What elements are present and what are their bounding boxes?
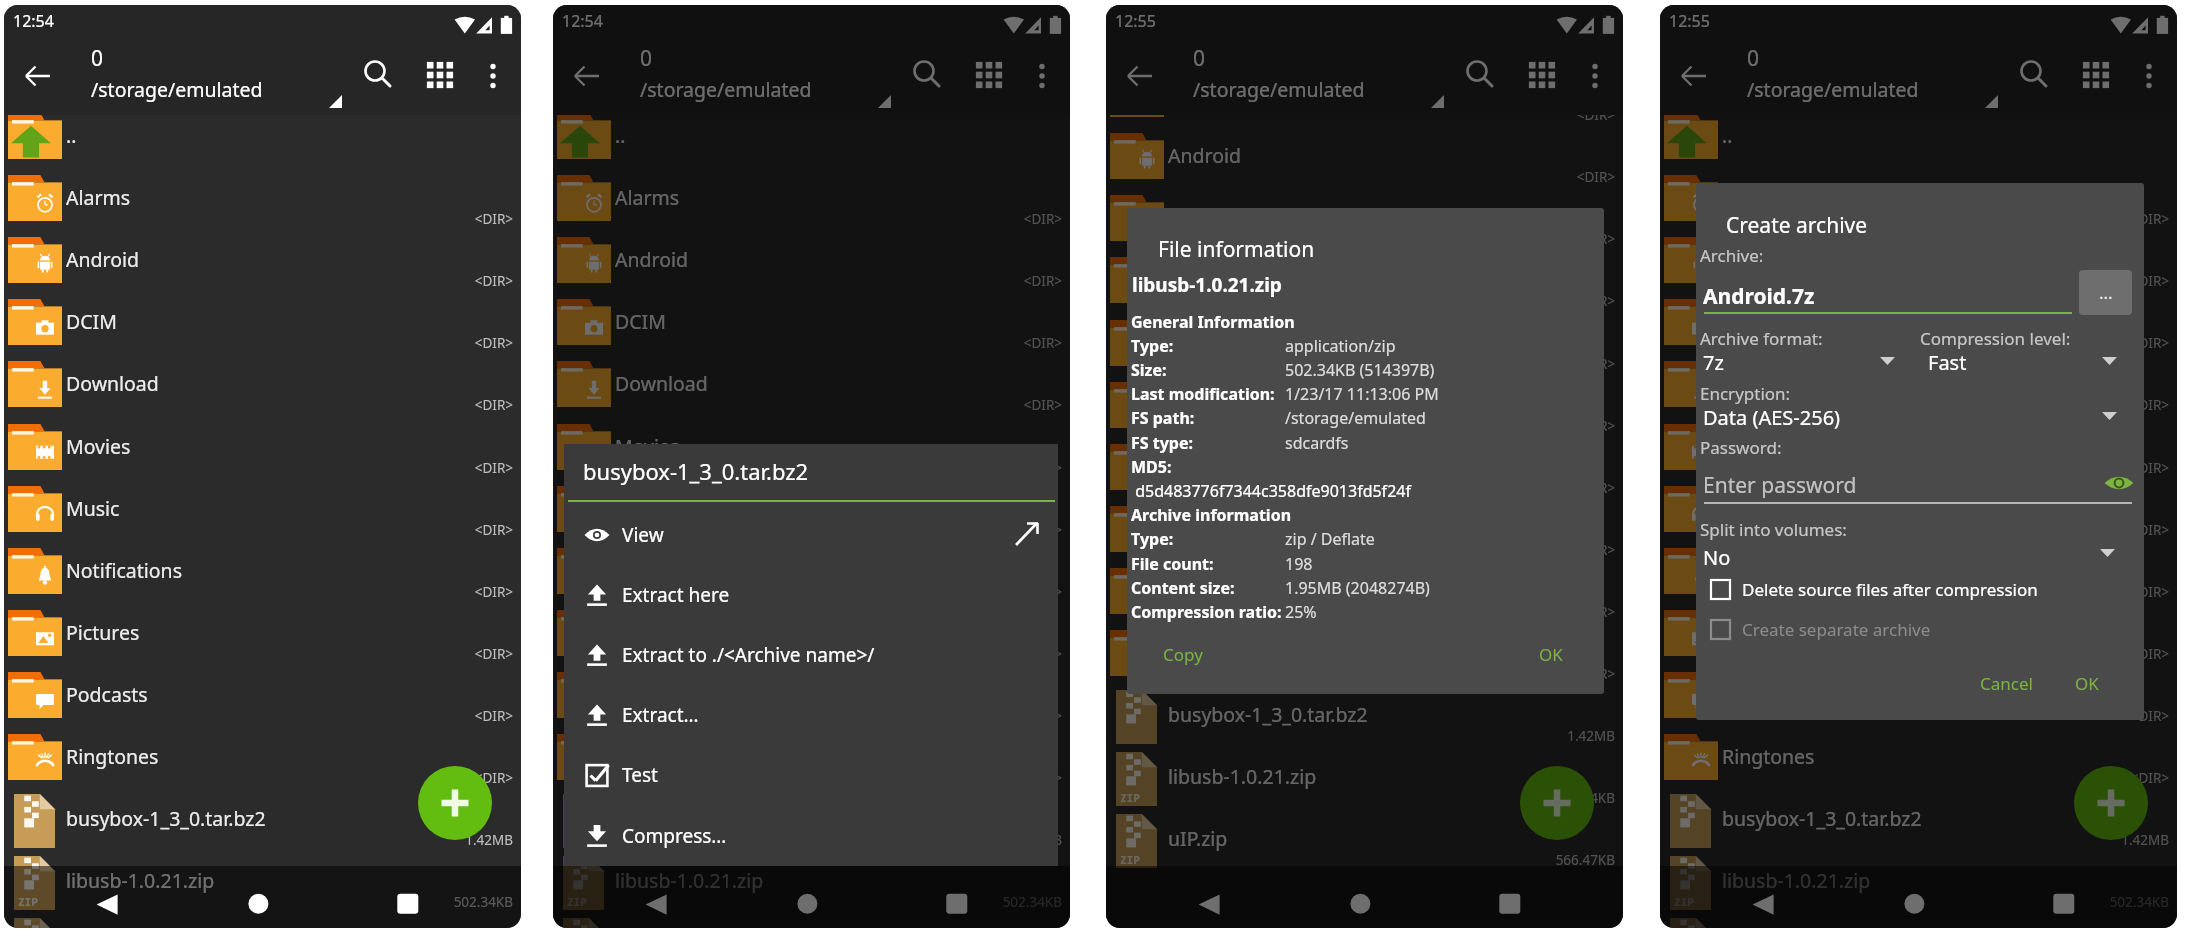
button[interactable]: ZIP	[4, 856, 521, 918]
button[interactable]: ZIP	[553, 856, 1070, 918]
button[interactable]: Android	[1660, 235, 2177, 297]
button[interactable]: Recent apps	[2040, 880, 2088, 928]
button[interactable]: ZIP	[1660, 856, 2177, 918]
button[interactable]: Search	[2009, 49, 2057, 97]
button[interactable]: Music	[1106, 380, 1623, 442]
button[interactable]: Download	[1660, 359, 2177, 421]
button[interactable]: Extract here	[564, 565, 1058, 625]
button[interactable]: More options	[1018, 52, 1066, 100]
button[interactable]: Pictures	[1106, 504, 1623, 566]
button[interactable]: ..	[1660, 111, 2177, 173]
button[interactable]: ZIP	[1660, 918, 2177, 928]
button[interactable]: Music	[1660, 484, 2177, 546]
button[interactable]: Home	[1336, 880, 1384, 928]
button[interactable]: Copy	[1163, 643, 1203, 666]
button[interactable]: Back	[563, 52, 611, 100]
button[interactable]: Recent apps	[384, 880, 432, 928]
button[interactable]: Alarms	[1660, 173, 2177, 235]
button[interactable]: Download	[4, 359, 521, 421]
button[interactable]: Delete source files after compression	[1710, 575, 2027, 603]
button[interactable]: Music	[4, 484, 521, 546]
button[interactable]: Search	[1455, 49, 1503, 97]
button[interactable]: Ringtones	[1106, 628, 1623, 690]
button[interactable]: Ringtones	[1660, 732, 2177, 794]
button[interactable]: Extract…	[564, 685, 1058, 745]
button[interactable]: Search	[902, 49, 950, 97]
button[interactable]: View	[564, 505, 1058, 565]
button[interactable]: Podcasts	[553, 670, 1070, 732]
button[interactable]: Extract to ./<Archive name>/	[564, 625, 1058, 685]
button[interactable]: Back	[634, 880, 682, 928]
button[interactable]: Back	[1116, 52, 1164, 100]
button[interactable]: Test	[564, 745, 1058, 805]
button[interactable]: ZIP	[4, 918, 521, 928]
button[interactable]: Notifications	[4, 546, 521, 608]
button[interactable]: Podcasts	[4, 670, 521, 732]
button[interactable]: Notifications	[1660, 546, 2177, 608]
button[interactable]: Add	[1520, 766, 1594, 840]
button[interactable]: DCIM	[4, 297, 521, 359]
button[interactable]: Cancel	[1980, 672, 2033, 695]
button[interactable]: Grid view	[1518, 51, 1566, 99]
button[interactable]: Notifications	[1106, 442, 1623, 504]
button[interactable]: Movies	[4, 422, 521, 484]
button[interactable]: Alarms	[1106, 69, 1623, 131]
button[interactable]: OK	[1539, 643, 1563, 666]
button[interactable]: Back	[85, 880, 133, 928]
button[interactable]: More options	[2125, 52, 2173, 100]
button[interactable]: Back	[1741, 880, 1789, 928]
button[interactable]: Back	[1187, 880, 1235, 928]
button[interactable]: DCIM	[1106, 193, 1623, 255]
button[interactable]: Pictures	[553, 608, 1070, 670]
button[interactable]: ZIP	[553, 918, 1070, 928]
button[interactable]: Download	[553, 359, 1070, 421]
button[interactable]: Compress…	[564, 806, 1058, 866]
button[interactable]: ..	[553, 111, 1070, 173]
button[interactable]: Back	[1670, 52, 1718, 100]
button[interactable]: Pictures	[1660, 608, 2177, 670]
button[interactable]: Recent apps	[1486, 880, 1534, 928]
button[interactable]: busybox-1_3_0.tar.bz2	[553, 794, 1070, 856]
button[interactable]: Android	[553, 235, 1070, 297]
button[interactable]: Movies	[1106, 318, 1623, 380]
button[interactable]: Grid view	[2072, 51, 2120, 99]
button[interactable]: More options	[469, 52, 517, 100]
button[interactable]: Android	[4, 235, 521, 297]
button[interactable]: Ringtones	[4, 732, 521, 794]
button[interactable]: Movies	[1660, 422, 2177, 484]
button[interactable]: ZIP	[1106, 752, 1623, 814]
button[interactable]: Show password	[2104, 472, 2134, 494]
button[interactable]: Home	[1890, 880, 1938, 928]
button[interactable]: Create separate archive	[1710, 615, 1920, 643]
button[interactable]: Grid view	[965, 51, 1013, 99]
button[interactable]: DCIM	[553, 297, 1070, 359]
button[interactable]: More options	[1571, 52, 1619, 100]
button[interactable]: Alarms	[553, 173, 1070, 235]
button[interactable]: Music	[553, 484, 1070, 546]
button[interactable]: Back	[14, 52, 62, 100]
button[interactable]: Pictures	[4, 608, 521, 670]
button[interactable]: OK	[2075, 672, 2099, 695]
button[interactable]: Notifications	[553, 546, 1070, 608]
button[interactable]: Grid view	[416, 51, 464, 99]
button[interactable]: Podcasts	[1106, 566, 1623, 628]
button[interactable]: Add	[418, 766, 492, 840]
button[interactable]: Home	[234, 880, 282, 928]
button[interactable]: Home	[783, 880, 831, 928]
button[interactable]: Alarms	[4, 173, 521, 235]
button[interactable]: Android	[1106, 131, 1623, 193]
button[interactable]: busybox-1_3_0.tar.bz2	[1106, 690, 1623, 752]
button[interactable]: Browse	[2079, 270, 2132, 315]
button[interactable]: Podcasts	[1660, 670, 2177, 732]
button[interactable]: Ringtones	[553, 732, 1070, 794]
button[interactable]: Add	[2074, 766, 2148, 840]
button[interactable]: DCIM	[1660, 297, 2177, 359]
button[interactable]: Movies	[553, 422, 1070, 484]
button[interactable]: busybox-1_3_0.tar.bz2	[1660, 794, 2177, 856]
button[interactable]: Search	[353, 49, 401, 97]
button[interactable]: Recent apps	[933, 880, 981, 928]
button[interactable]: busybox-1_3_0.tar.bz2	[4, 794, 521, 856]
button[interactable]: ZIP	[1106, 814, 1623, 876]
button[interactable]: Download	[1106, 255, 1623, 317]
button[interactable]: ..	[4, 111, 521, 173]
